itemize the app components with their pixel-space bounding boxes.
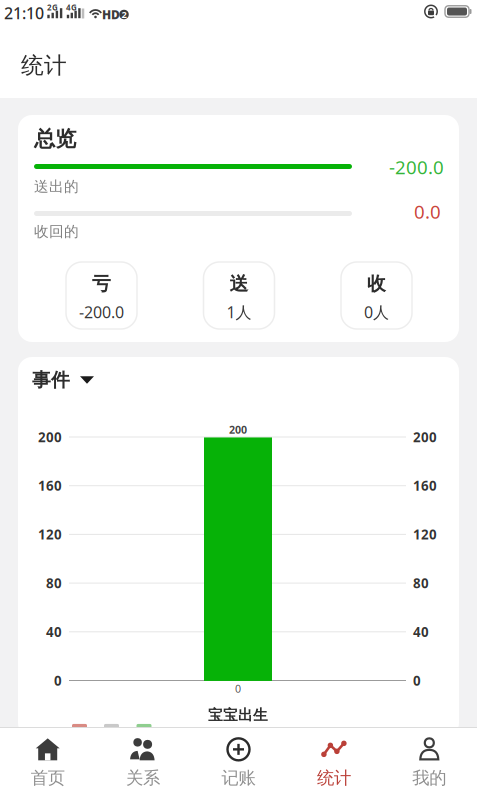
staticText: 80 bbox=[46, 574, 62, 592]
staticText: -200.0 bbox=[389, 155, 444, 179]
staticText: HD bbox=[102, 6, 120, 22]
button[interactable]: 我的 bbox=[384, 732, 474, 794]
staticText: 120 bbox=[413, 525, 437, 543]
staticText: -200.0 bbox=[79, 301, 124, 322]
staticText: 0人 bbox=[364, 301, 389, 322]
button[interactable]: 首页 bbox=[3, 732, 93, 794]
staticText: 0 bbox=[235, 681, 241, 696]
button[interactable]: 关系 bbox=[98, 732, 188, 794]
staticText: 亏 bbox=[92, 272, 111, 295]
staticText: 1人 bbox=[226, 301, 251, 322]
staticText: 120 bbox=[38, 525, 62, 543]
staticText: 收 bbox=[367, 272, 386, 295]
staticText: 4G bbox=[66, 2, 77, 13]
staticText: 40 bbox=[46, 623, 62, 641]
button[interactable]: 事件 bbox=[32, 368, 94, 391]
staticText: 0 bbox=[413, 672, 421, 689]
staticText: 宝宝出生 bbox=[208, 706, 268, 724]
staticText: 首页 bbox=[31, 767, 65, 789]
staticText: 记账 bbox=[221, 767, 255, 789]
staticText: 2 bbox=[121, 8, 126, 21]
staticText: 160 bbox=[38, 477, 62, 494]
staticText: 统计 bbox=[317, 767, 351, 789]
button[interactable]: 记账 bbox=[193, 732, 283, 794]
staticText: 总览 bbox=[34, 126, 76, 152]
staticText: 2G bbox=[47, 2, 58, 13]
button[interactable]: 亏 bbox=[66, 262, 137, 329]
staticText: 送出的 bbox=[34, 177, 79, 195]
button[interactable]: 收 bbox=[341, 262, 412, 329]
button[interactable]: 统计 bbox=[289, 732, 379, 794]
staticText: 21:10 bbox=[4, 2, 44, 24]
staticText: 关系 bbox=[126, 767, 160, 789]
staticText: 事件 bbox=[32, 368, 70, 391]
staticText: 0.0 bbox=[414, 199, 441, 224]
staticText: 80 bbox=[413, 574, 429, 592]
staticText: 0 bbox=[54, 672, 62, 689]
staticText: 统计 bbox=[21, 52, 67, 79]
staticText: 收回的 bbox=[34, 222, 79, 240]
staticText: 200 bbox=[38, 428, 62, 446]
button[interactable]: 送 bbox=[203, 262, 274, 329]
staticText: 200 bbox=[229, 422, 247, 437]
staticText: 200 bbox=[413, 428, 437, 446]
staticText: 40 bbox=[413, 623, 429, 641]
staticText: 160 bbox=[413, 477, 437, 494]
staticText: 送 bbox=[229, 272, 248, 295]
staticText: 我的 bbox=[412, 767, 446, 789]
